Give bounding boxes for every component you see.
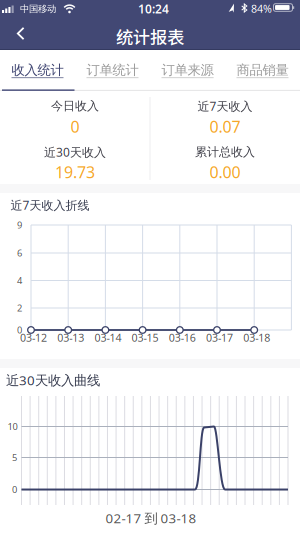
button[interactable]: 订单统计 <box>75 50 150 91</box>
staticText: 近7天收入 <box>197 98 252 114</box>
button[interactable]: Back <box>0 20 40 50</box>
staticText: 统计报表 <box>116 24 184 49</box>
staticText: 84% <box>251 1 272 16</box>
staticText: 订单来源 <box>161 62 213 78</box>
staticText: 03-13 <box>57 330 84 345</box>
staticText: 近30天收入 <box>44 144 106 160</box>
staticText: 累计总收入 <box>195 145 255 159</box>
staticText: 近7天收入折线 <box>10 197 89 213</box>
staticText: 03-16 <box>169 330 196 345</box>
staticText: 9 <box>17 219 22 231</box>
staticText: 03-12 <box>20 330 47 345</box>
staticText: 商品销量 <box>236 62 288 78</box>
staticText: 6 <box>17 247 22 259</box>
staticText: 10 <box>7 420 17 433</box>
staticText: 收入统计 <box>11 62 63 78</box>
staticText: 今日收入 <box>51 99 99 113</box>
staticText: 19.73 <box>55 161 95 183</box>
staticText: 03-15 <box>132 330 159 345</box>
staticText: 0.07 <box>209 116 240 137</box>
button[interactable]: 订单来源 <box>150 50 225 91</box>
staticText: 订单统计 <box>86 62 138 78</box>
staticText: 03-14 <box>94 330 121 345</box>
staticText: 0 <box>17 324 22 336</box>
button[interactable]: 收入统计 <box>0 50 75 91</box>
button[interactable]: 商品销量 <box>225 50 300 91</box>
staticText: 10:24 <box>138 1 169 17</box>
staticText: 0.00 <box>209 161 240 183</box>
staticText: 近30天收入曲线 <box>6 371 100 389</box>
staticText: 0 <box>12 483 17 496</box>
staticText: 2 <box>17 302 22 314</box>
staticText: 03-18 <box>243 330 270 345</box>
staticText: 0 <box>70 116 79 137</box>
staticText: 4 <box>17 274 22 287</box>
staticText: 中国移动 <box>20 3 56 15</box>
staticText: 02-17 到 03-18 <box>105 509 196 527</box>
staticText: 03-17 <box>206 330 233 345</box>
staticText: 5 <box>12 451 17 464</box>
